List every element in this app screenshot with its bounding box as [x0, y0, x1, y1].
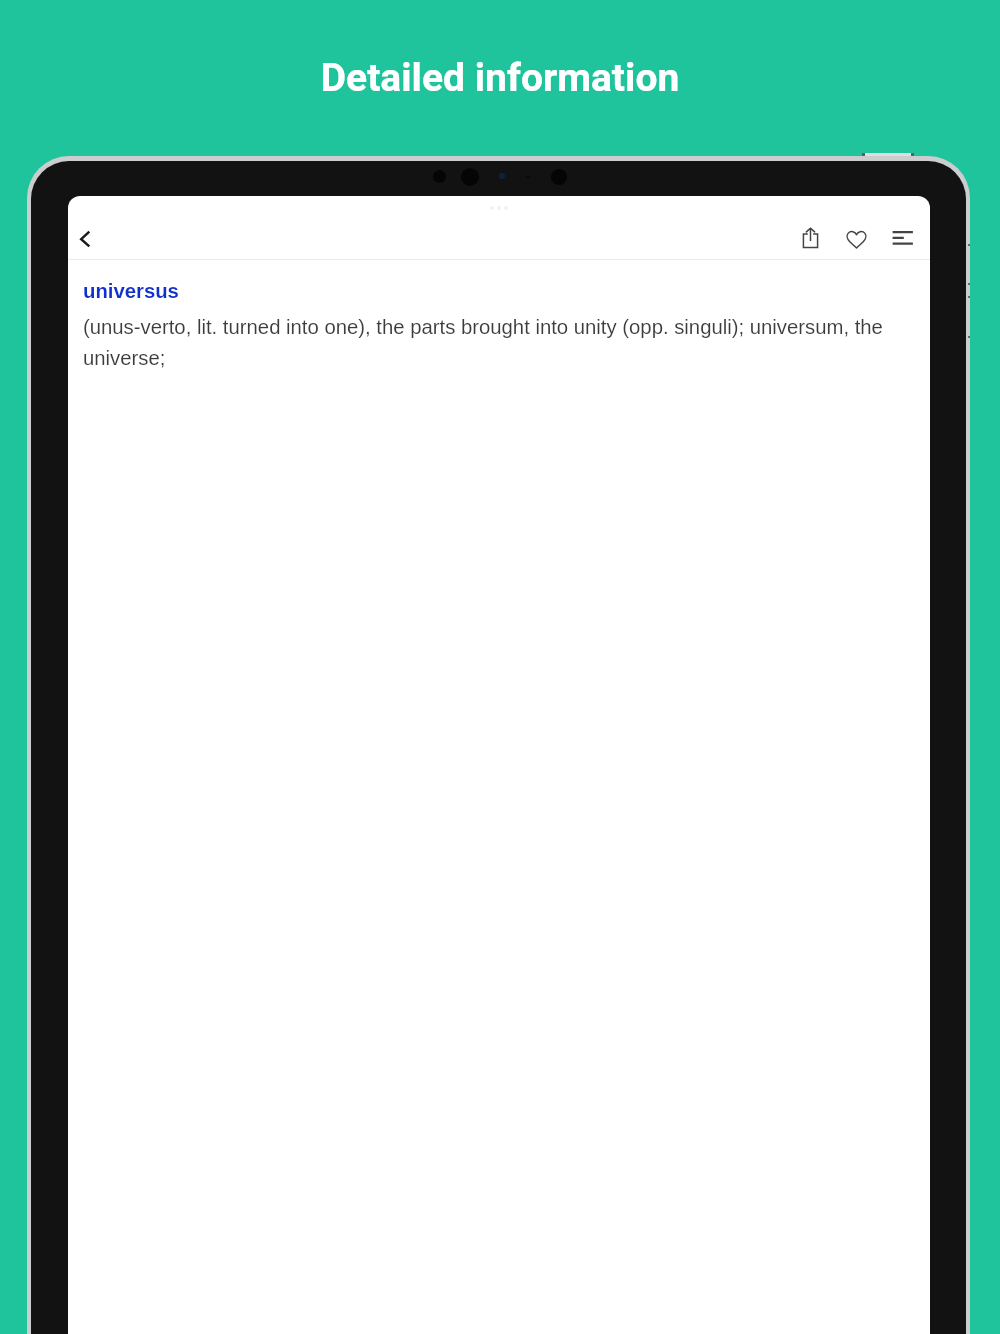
staticText: (unus-verto, lit. turned into one), the … [83, 316, 888, 369]
staticText: Detailed information [0, 55, 1000, 101]
button[interactable]: Share [789, 217, 831, 259]
button[interactable]: Menu [882, 219, 924, 261]
button[interactable]: Favorite [835, 218, 877, 260]
button[interactable]: Back [71, 227, 101, 257]
staticText: universus [83, 280, 179, 303]
